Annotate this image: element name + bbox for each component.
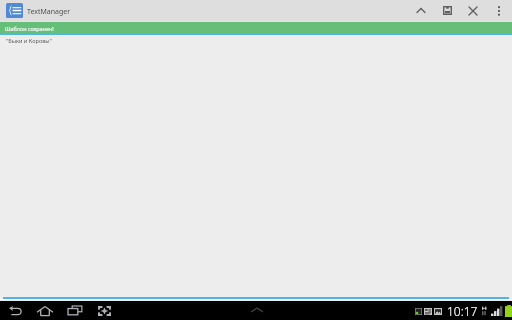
button[interactable]: Home	[35, 301, 54, 320]
button[interactable]: Close	[460, 0, 486, 21]
button[interactable]: "Быки и Коровы"	[0, 35, 512, 301]
button[interactable]: Hide keyboard	[247, 301, 266, 320]
button[interactable]: Collapse	[408, 0, 434, 21]
button[interactable]: More options	[486, 0, 512, 21]
staticText: TextManager	[27, 7, 71, 17]
button[interactable]: Recent apps	[65, 301, 84, 320]
button[interactable]: Save	[434, 0, 460, 21]
staticText: Шаблон сохранен!	[5, 25, 54, 32]
button[interactable]: Screenshot	[95, 301, 114, 320]
button[interactable]: Back	[6, 301, 25, 320]
staticText: "Быки и Коровы"	[6, 37, 52, 45]
staticText: 10:17	[447, 303, 478, 319]
